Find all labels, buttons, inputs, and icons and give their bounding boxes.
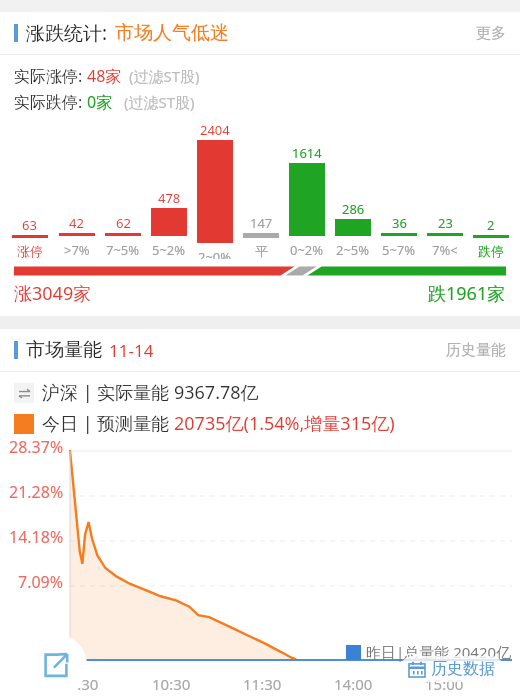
staticText: 更多 <box>476 24 506 43</box>
staticText: 涨停 <box>17 243 43 259</box>
staticText: 7%< <box>432 241 458 259</box>
staticText: 2~5% <box>336 241 370 259</box>
staticText: (过滤ST股) <box>129 66 200 86</box>
staticText: 历史量能 <box>446 341 506 360</box>
staticText: 今日 | 预测量能 <box>42 411 174 436</box>
staticText: 11-14 <box>109 339 154 362</box>
button[interactable]: 历史数据 <box>400 656 504 682</box>
staticText: 14.18% <box>9 526 64 548</box>
staticText: 147 <box>250 214 273 232</box>
staticText: 36 <box>392 214 407 232</box>
staticText: 2 <box>487 216 495 234</box>
staticText: 09:30 <box>60 674 99 694</box>
staticText: 市场量能 <box>26 338 102 362</box>
staticText: 14:00 <box>334 674 373 694</box>
staticText: 10:30 <box>152 674 191 694</box>
staticText: 0~2% <box>290 241 324 259</box>
staticText: 跌1961家 <box>428 281 506 306</box>
staticText: 5~7% <box>382 241 416 259</box>
staticText: 沪深 | 实际量能 9367.78亿 <box>42 380 259 405</box>
staticText: 15:00 <box>425 674 464 694</box>
staticText: >7% <box>64 241 90 259</box>
staticText: 0家 <box>87 91 113 113</box>
button[interactable]: 涨跌统计: <box>0 12 520 54</box>
button[interactable]: 市场量能 <box>0 329 520 371</box>
staticText: 涨3049家 <box>14 281 92 306</box>
staticText: 历史数据 <box>431 659 495 679</box>
staticText: 涨跌统计: <box>26 20 108 46</box>
staticText: 昨日|总量能 20420亿 <box>366 642 512 662</box>
staticText: 市场人气低迷 <box>115 21 229 45</box>
staticText: 23 <box>438 214 453 232</box>
staticText: 28.37% <box>9 436 64 458</box>
staticText: 实际涨停: <box>14 65 87 87</box>
staticText: 42 <box>69 214 84 232</box>
staticText: 48家 <box>87 65 122 87</box>
staticText: 286 <box>342 200 365 218</box>
staticText: (过滤ST股) <box>124 92 195 112</box>
staticText: 1614 <box>292 144 322 162</box>
button[interactable]: Share <box>25 634 87 696</box>
staticText: 62 <box>116 214 131 232</box>
staticText: 478 <box>158 189 181 207</box>
staticText: 20735亿(1.54%,增量315亿) <box>174 411 395 436</box>
staticText: 21.28% <box>9 481 64 503</box>
staticText: 跌停 <box>478 243 504 259</box>
staticText: 11:30 <box>243 674 282 694</box>
staticText: 5~2% <box>152 241 186 259</box>
staticText: 2~0% <box>198 248 232 259</box>
staticText: 实际跌停: <box>14 91 87 113</box>
staticText: 7~5% <box>106 241 140 259</box>
staticText: 2404 <box>200 121 230 139</box>
staticText: 63 <box>22 216 37 234</box>
staticText: 平 <box>255 243 268 259</box>
staticText: 7.09% <box>18 571 64 593</box>
